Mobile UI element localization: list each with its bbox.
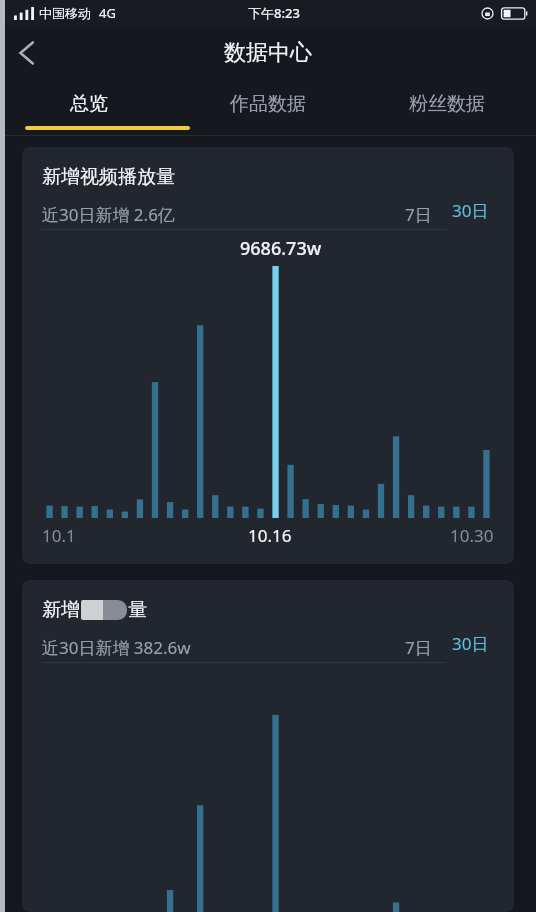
button[interactable]: 作品数据 — [178, 80, 357, 136]
staticText: 粉丝数据 — [409, 92, 485, 116]
button[interactable]: 粉丝数据 — [357, 80, 536, 136]
staticText: 10.1 — [42, 524, 76, 547]
staticText: 数据中心 — [224, 39, 312, 67]
button[interactable]: 总览 — [0, 80, 178, 136]
staticText: 中国移动 — [39, 5, 91, 21]
staticText: 7日 — [405, 636, 432, 659]
staticText: 近30日新增 2.6亿 — [42, 203, 175, 226]
staticText: 总览 — [70, 92, 108, 116]
button[interactable]: 30日 — [448, 632, 492, 662]
staticText: 10.16 — [248, 524, 292, 547]
staticText: 量 — [128, 598, 147, 622]
button[interactable]: 7日 — [399, 634, 438, 661]
staticText: 作品数据 — [230, 92, 306, 116]
staticText: 10.30 — [450, 524, 494, 547]
staticText: 近30日新增 382.6w — [42, 636, 191, 659]
staticText: 9686.73w — [240, 236, 322, 261]
button[interactable]: 30日 — [448, 199, 492, 229]
staticText: 4G — [99, 4, 116, 22]
staticText: 新增视频播放量 — [42, 165, 175, 189]
staticText: 30日 — [452, 199, 489, 222]
button[interactable]: 7日 — [399, 201, 438, 228]
staticText: 新增 — [42, 598, 80, 622]
staticText: 30日 — [452, 632, 489, 655]
button[interactable]: Back — [0, 27, 52, 79]
staticText: 下午8:23 — [248, 4, 300, 22]
button[interactable]: 新增 — [22, 580, 514, 912]
staticText: 7日 — [405, 203, 432, 226]
button[interactable]: 新增视频播放量 — [22, 147, 514, 564]
